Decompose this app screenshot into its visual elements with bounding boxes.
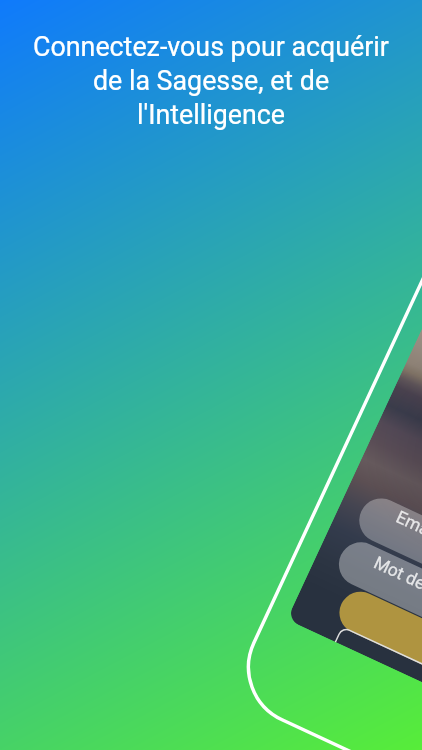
other: Connectez-vous pour acquérir de la Sages… — [0, 0, 422, 750]
staticText: Connectez-vous pour acquérir de la Sages… — [18, 31, 404, 131]
